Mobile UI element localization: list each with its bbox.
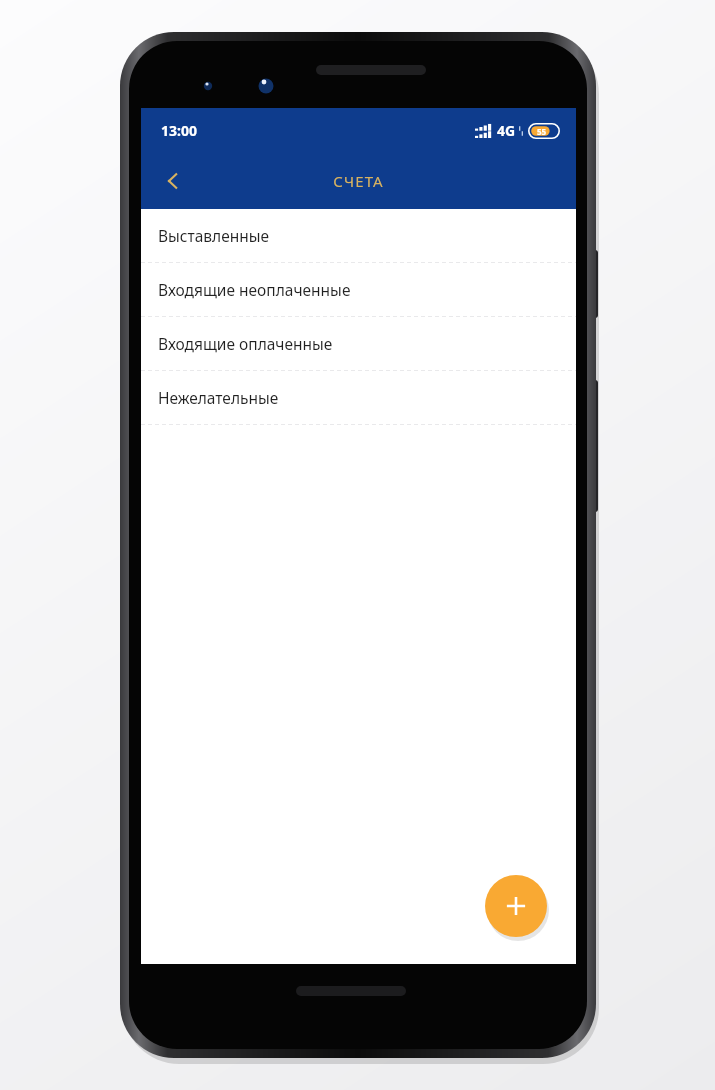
staticText: Выставленные: [158, 225, 270, 246]
staticText: 4G: [497, 121, 516, 140]
button[interactable]: Нежелательные: [141, 371, 576, 424]
button[interactable]: Входящие неоплаченные: [141, 263, 576, 316]
button[interactable]: Входящие оплаченные: [141, 317, 576, 370]
button[interactable]: Назад: [149, 157, 197, 205]
button[interactable]: Добавить счёт: [485, 875, 547, 937]
staticText: Нежелательные: [158, 387, 279, 408]
staticText: 55: [537, 126, 547, 137]
staticText: СЧЕТА: [333, 171, 384, 191]
staticText: Входящие неоплаченные: [158, 279, 351, 300]
staticText: Входящие оплаченные: [158, 333, 333, 354]
staticText: 13:00: [161, 121, 197, 140]
button[interactable]: Выставленные: [141, 209, 576, 262]
